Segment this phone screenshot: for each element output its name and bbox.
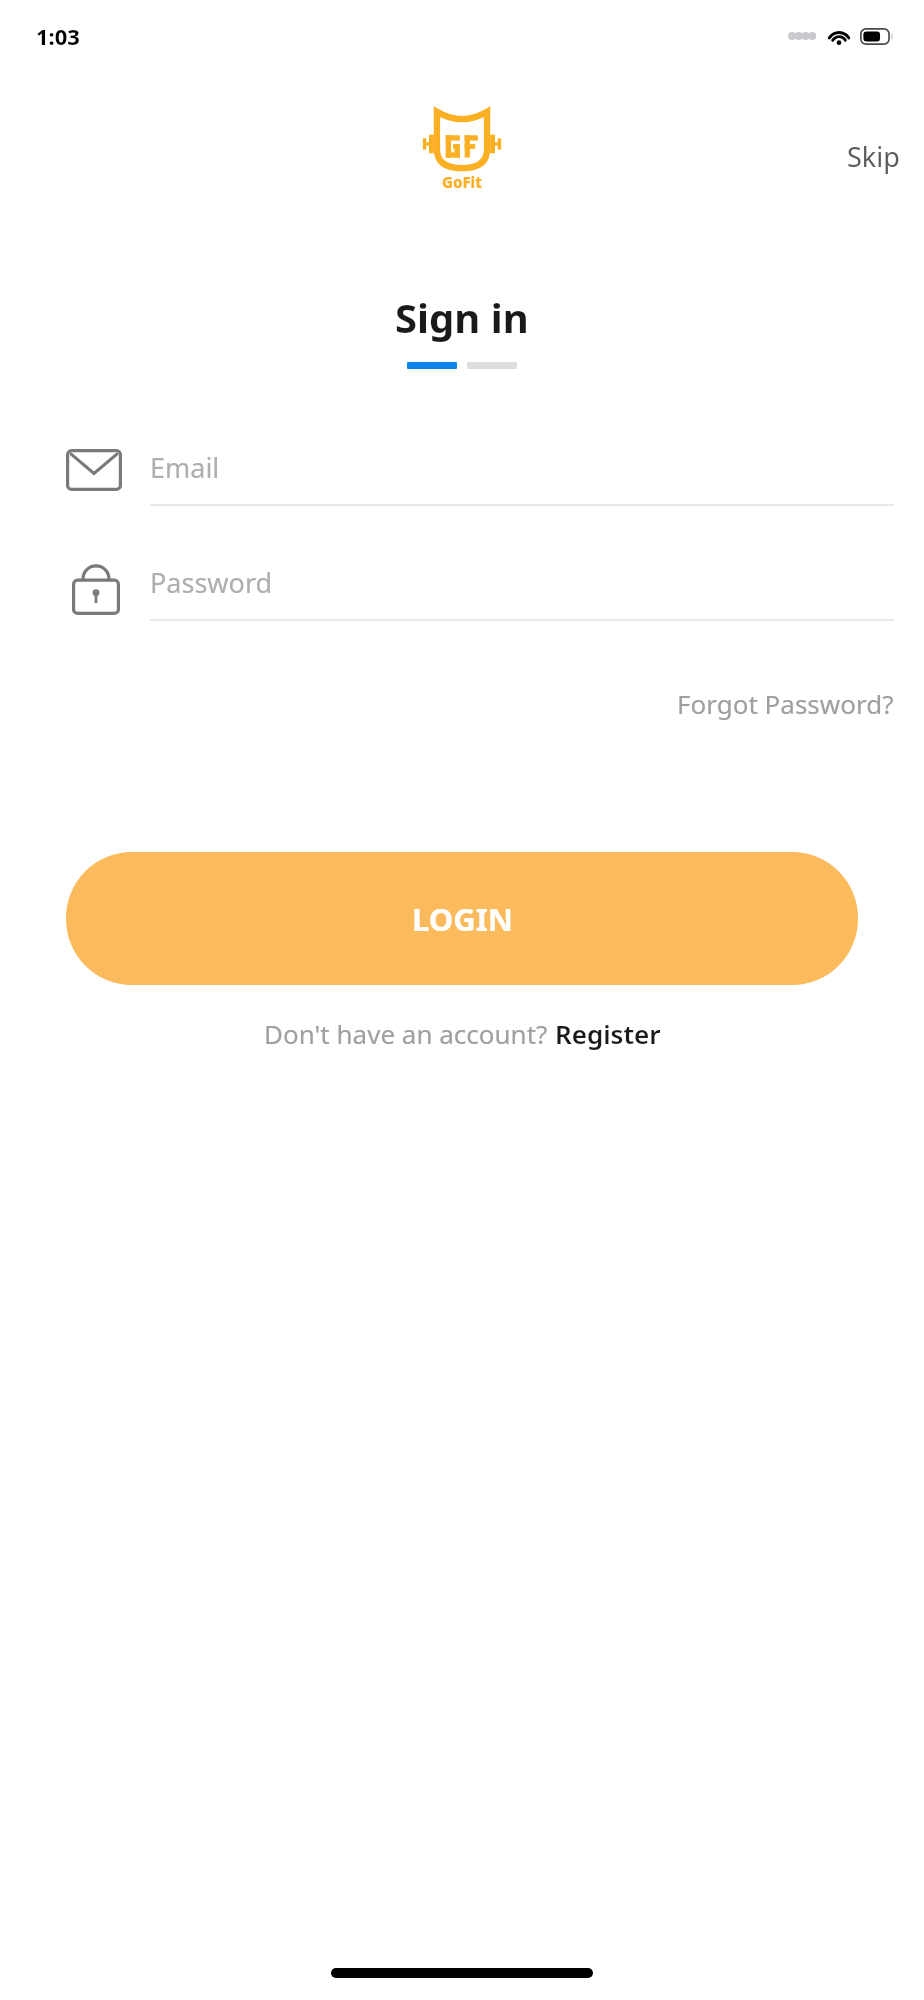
staticText: LOGIN (412, 898, 513, 940)
staticText: Skip (847, 138, 900, 175)
staticText: GoFit (442, 172, 482, 192)
button[interactable]: Email (150, 430, 894, 504)
button[interactable]: LOGIN (66, 852, 858, 985)
staticText: Register (555, 1016, 661, 1051)
button[interactable]: Forgot Password? (647, 676, 924, 731)
staticText: Email (150, 449, 220, 486)
staticText: Don't have an account? (264, 1016, 555, 1051)
button[interactable]: Don't have an account? (248, 1008, 677, 1059)
staticText: 1:03 (36, 21, 80, 51)
button[interactable]: Password (150, 545, 894, 619)
staticText: Forgot Password? (677, 686, 894, 721)
staticText: Password (150, 564, 273, 601)
button[interactable]: Skip (823, 130, 924, 183)
staticText: Sign in (395, 290, 529, 344)
